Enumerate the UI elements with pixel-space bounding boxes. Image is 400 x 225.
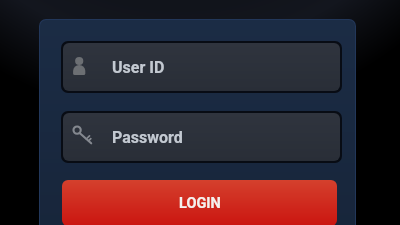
button[interactable]: LOGIN — [62, 180, 337, 225]
other: User — [69, 55, 93, 79]
button[interactable]: User — [61, 41, 342, 93]
staticText: Password — [112, 128, 183, 147]
other: Password — [69, 125, 93, 149]
button[interactable]: Password — [61, 111, 342, 163]
staticText: LOGIN — [179, 195, 221, 212]
staticText: User ID — [112, 58, 165, 77]
